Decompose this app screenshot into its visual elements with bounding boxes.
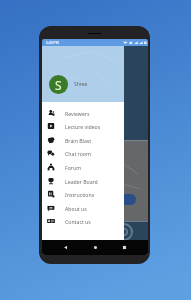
button[interactable]: Leader Board (42, 174, 124, 188)
staticText: Lecture videos (65, 123, 101, 130)
staticText: Contact us (65, 218, 91, 225)
staticText: 5:43 PM (46, 40, 59, 45)
button[interactable]: Recents (121, 244, 128, 251)
staticText: Instructions (65, 191, 95, 198)
button[interactable]: Forum (42, 160, 124, 174)
staticText: Forum (65, 164, 82, 171)
staticText: Shree (74, 81, 88, 88)
button[interactable]: Back (62, 244, 69, 251)
button[interactable]: Reviewers (42, 106, 124, 120)
staticText: Chat room (65, 150, 91, 157)
button[interactable]: S (49, 75, 68, 94)
button[interactable]: Chat room (42, 146, 124, 160)
button[interactable]: Contact us (42, 214, 124, 228)
button[interactable]: Lecture videos (42, 119, 124, 133)
button[interactable]: About us (42, 201, 124, 215)
staticText: Reviewers (65, 110, 90, 117)
staticText: Brain Blast (65, 137, 92, 144)
staticText: Leader Board (65, 178, 98, 185)
staticText: About us (65, 205, 87, 212)
button[interactable]: Home (92, 244, 99, 251)
button[interactable]: Instructions (42, 187, 124, 201)
staticText: S (55, 77, 62, 93)
button[interactable]: Brain Blast (42, 133, 124, 147)
